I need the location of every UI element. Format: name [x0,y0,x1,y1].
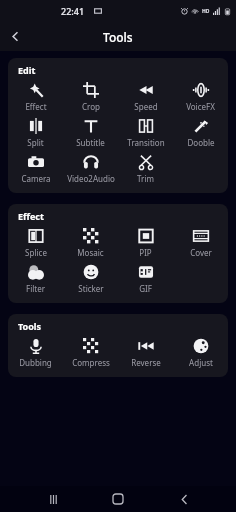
button[interactable]: Dubbing [8,335,63,371]
button[interactable]: Cover [173,225,228,261]
staticText: Adjust [189,357,213,368]
button[interactable]: Camera [8,151,63,187]
staticText: Reverse [131,357,161,368]
button[interactable]: Speed [118,79,173,115]
button[interactable]: Filter [8,261,63,297]
staticText: Dubbing [19,357,52,368]
button[interactable]: Home [105,486,131,512]
staticText: Mosaic [77,247,104,258]
button[interactable]: Sticker [63,261,118,297]
button[interactable]: Recents [40,486,66,512]
staticText: Effect [18,210,44,222]
button[interactable]: Splice [8,225,63,261]
button[interactable]: Crop [63,79,118,115]
staticText: Compress [72,357,110,368]
button[interactable]: Trim [118,151,173,187]
button[interactable]: Mosaic [63,225,118,261]
button[interactable]: Split [8,115,63,151]
button[interactable]: Dooble [173,115,228,151]
button[interactable]: Effect [8,79,63,115]
staticText: GIF [139,283,152,294]
staticText: Speed [134,101,158,112]
staticText: Dooble [187,137,215,148]
staticText: Subtitle [76,137,105,148]
button[interactable]: Video2Audio [63,151,118,187]
staticText: HD [202,8,210,15]
staticText: Tools [103,29,133,45]
button[interactable]: Reverse [118,335,173,371]
staticText: Video2Audio [67,173,115,184]
staticText: 22:41 [61,5,85,17]
staticText: Transition [127,137,165,148]
staticText: Camera [21,173,51,184]
staticText: Trim [137,173,154,184]
button[interactable]: Subtitle [63,115,118,151]
button[interactable]: PIP [118,225,173,261]
staticText: Splice [25,247,47,258]
button[interactable]: Back [0,22,30,51]
staticText: PIP [139,247,152,258]
button[interactable]: Back [171,486,197,512]
staticText: Split [27,137,44,148]
staticText: Sticker [78,283,104,294]
button[interactable]: VoiceFX [173,79,228,115]
staticText: Crop [82,101,100,112]
staticText: VoiceFX [186,101,215,112]
button[interactable]: Compress [63,335,118,371]
staticText: Filter [26,283,45,294]
button[interactable]: GIF [118,261,173,297]
staticText: Tools [18,320,42,332]
staticText: Cover [190,247,212,258]
button[interactable]: Transition [118,115,173,151]
staticText: Effect [25,101,47,112]
button[interactable]: Adjust [173,335,228,371]
staticText: Edit [18,64,36,76]
